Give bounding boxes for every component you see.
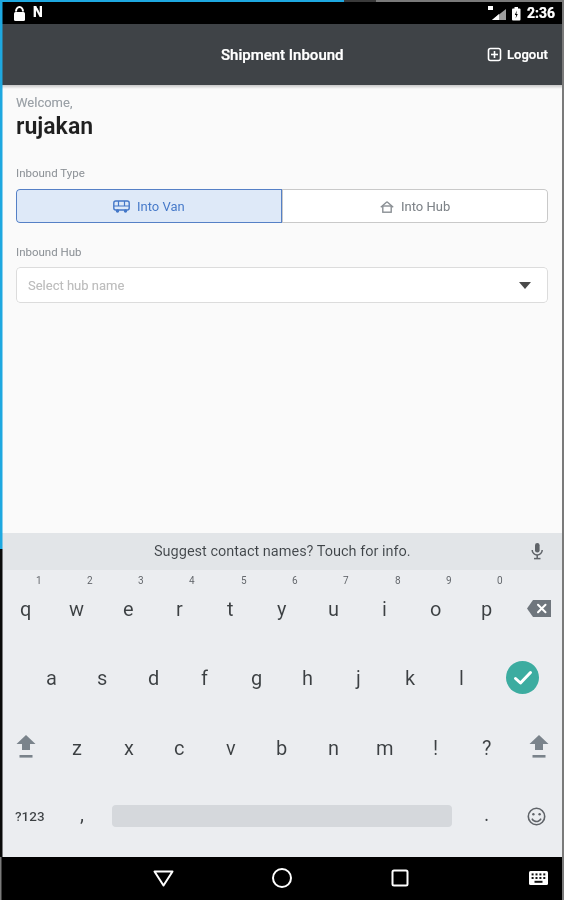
- button[interactable]: k: [385, 652, 436, 702]
- button[interactable]: o: [410, 585, 461, 631]
- button[interactable]: [513, 585, 564, 631]
- staticText: d: [148, 666, 160, 689]
- staticText: Welcome,: [16, 95, 73, 110]
- staticText: f: [201, 666, 208, 689]
- button[interactable]: [0, 722, 51, 772]
- staticText: 4: [189, 575, 195, 587]
- staticText: ?123: [15, 808, 45, 824]
- button[interactable]: .: [472, 788, 502, 838]
- button[interactable]: [513, 722, 564, 772]
- button[interactable]: u: [308, 585, 359, 631]
- staticText: s: [97, 666, 108, 689]
- button[interactable]: w: [51, 585, 102, 631]
- button[interactable]: l: [436, 652, 487, 702]
- button[interactable]: Suggest contact names? Touch for info.: [0, 533, 564, 570]
- button[interactable]: z: [51, 722, 102, 772]
- staticText: 8: [395, 575, 401, 587]
- button[interactable]: Select hub name: [16, 267, 548, 303]
- button[interactable]: v: [205, 722, 256, 772]
- staticText: N: [33, 4, 43, 20]
- button[interactable]: [520, 864, 556, 892]
- staticText: u: [328, 597, 340, 620]
- staticText: Shipment Inbound: [221, 46, 344, 64]
- button[interactable]: i: [359, 585, 410, 631]
- staticText: z: [72, 736, 82, 759]
- staticText: t: [227, 597, 234, 620]
- button[interactable]: f: [179, 652, 230, 702]
- staticText: ,: [80, 802, 84, 825]
- button[interactable]: e: [103, 585, 154, 631]
- staticText: 7: [343, 575, 349, 587]
- staticText: 3: [138, 575, 144, 587]
- staticText: w: [69, 597, 85, 620]
- staticText: j: [356, 666, 361, 689]
- staticText: Inbound Type: [16, 166, 85, 179]
- staticText: 2:36: [527, 5, 556, 21]
- staticText: 6: [292, 575, 298, 587]
- button[interactable]: ?: [461, 722, 512, 772]
- button[interactable]: n: [308, 722, 359, 772]
- staticText: Suggest contact names? Touch for info.: [154, 543, 411, 560]
- button[interactable]: r: [154, 585, 205, 631]
- staticText: Inbound Hub: [16, 245, 82, 258]
- staticText: y: [277, 597, 287, 620]
- staticText: k: [405, 666, 416, 689]
- button[interactable]: d: [128, 652, 179, 702]
- button[interactable]: [380, 862, 420, 894]
- staticText: b: [276, 736, 288, 759]
- staticText: 2: [87, 575, 93, 587]
- staticText: 5: [241, 575, 247, 587]
- staticText: g: [251, 666, 263, 689]
- staticText: r: [176, 597, 183, 620]
- button[interactable]: y: [256, 585, 307, 631]
- button[interactable]: s: [77, 652, 128, 702]
- button[interactable]: [262, 862, 302, 894]
- button[interactable]: m: [359, 722, 410, 772]
- staticText: 9: [446, 575, 452, 587]
- staticText: .: [484, 802, 490, 825]
- button[interactable]: Into Hub: [282, 189, 548, 223]
- staticText: 0: [497, 575, 503, 587]
- staticText: v: [226, 736, 236, 759]
- button[interactable]: q: [0, 585, 51, 631]
- button[interactable]: ?123: [4, 791, 56, 841]
- staticText: 1: [36, 575, 42, 587]
- staticText: l: [459, 666, 464, 689]
- staticText: Select hub name: [28, 278, 125, 293]
- button[interactable]: x: [103, 722, 154, 772]
- staticText: Into Hub: [401, 199, 451, 214]
- button[interactable]: Logout: [488, 47, 548, 62]
- staticText: Into Van: [137, 199, 185, 214]
- staticText: p: [481, 597, 493, 620]
- button[interactable]: [516, 791, 556, 841]
- staticText: c: [174, 736, 185, 759]
- button[interactable]: ,: [67, 788, 97, 838]
- button[interactable]: j: [333, 652, 384, 702]
- button[interactable]: [500, 655, 544, 699]
- staticText: n: [328, 736, 340, 759]
- staticText: x: [124, 736, 134, 759]
- staticText: ?: [482, 736, 492, 759]
- staticText: Logout: [507, 47, 548, 62]
- staticText: e: [123, 597, 134, 620]
- button[interactable]: h: [282, 652, 333, 702]
- button[interactable]: c: [154, 722, 205, 772]
- staticText: q: [20, 597, 32, 620]
- button[interactable]: b: [256, 722, 307, 772]
- button[interactable]: g: [231, 652, 282, 702]
- staticText: !: [433, 736, 439, 759]
- button[interactable]: Into Van: [16, 189, 282, 223]
- staticText: h: [302, 666, 314, 689]
- button[interactable]: t: [205, 585, 256, 631]
- staticText: rujakan: [16, 113, 94, 140]
- button[interactable]: !: [410, 722, 461, 772]
- button[interactable]: [143, 862, 183, 894]
- staticText: i: [382, 597, 387, 620]
- button[interactable]: p: [461, 585, 512, 631]
- staticText: m: [376, 736, 394, 759]
- staticText: a: [46, 666, 57, 689]
- staticText: o: [430, 597, 442, 620]
- button[interactable]: a: [26, 652, 77, 702]
